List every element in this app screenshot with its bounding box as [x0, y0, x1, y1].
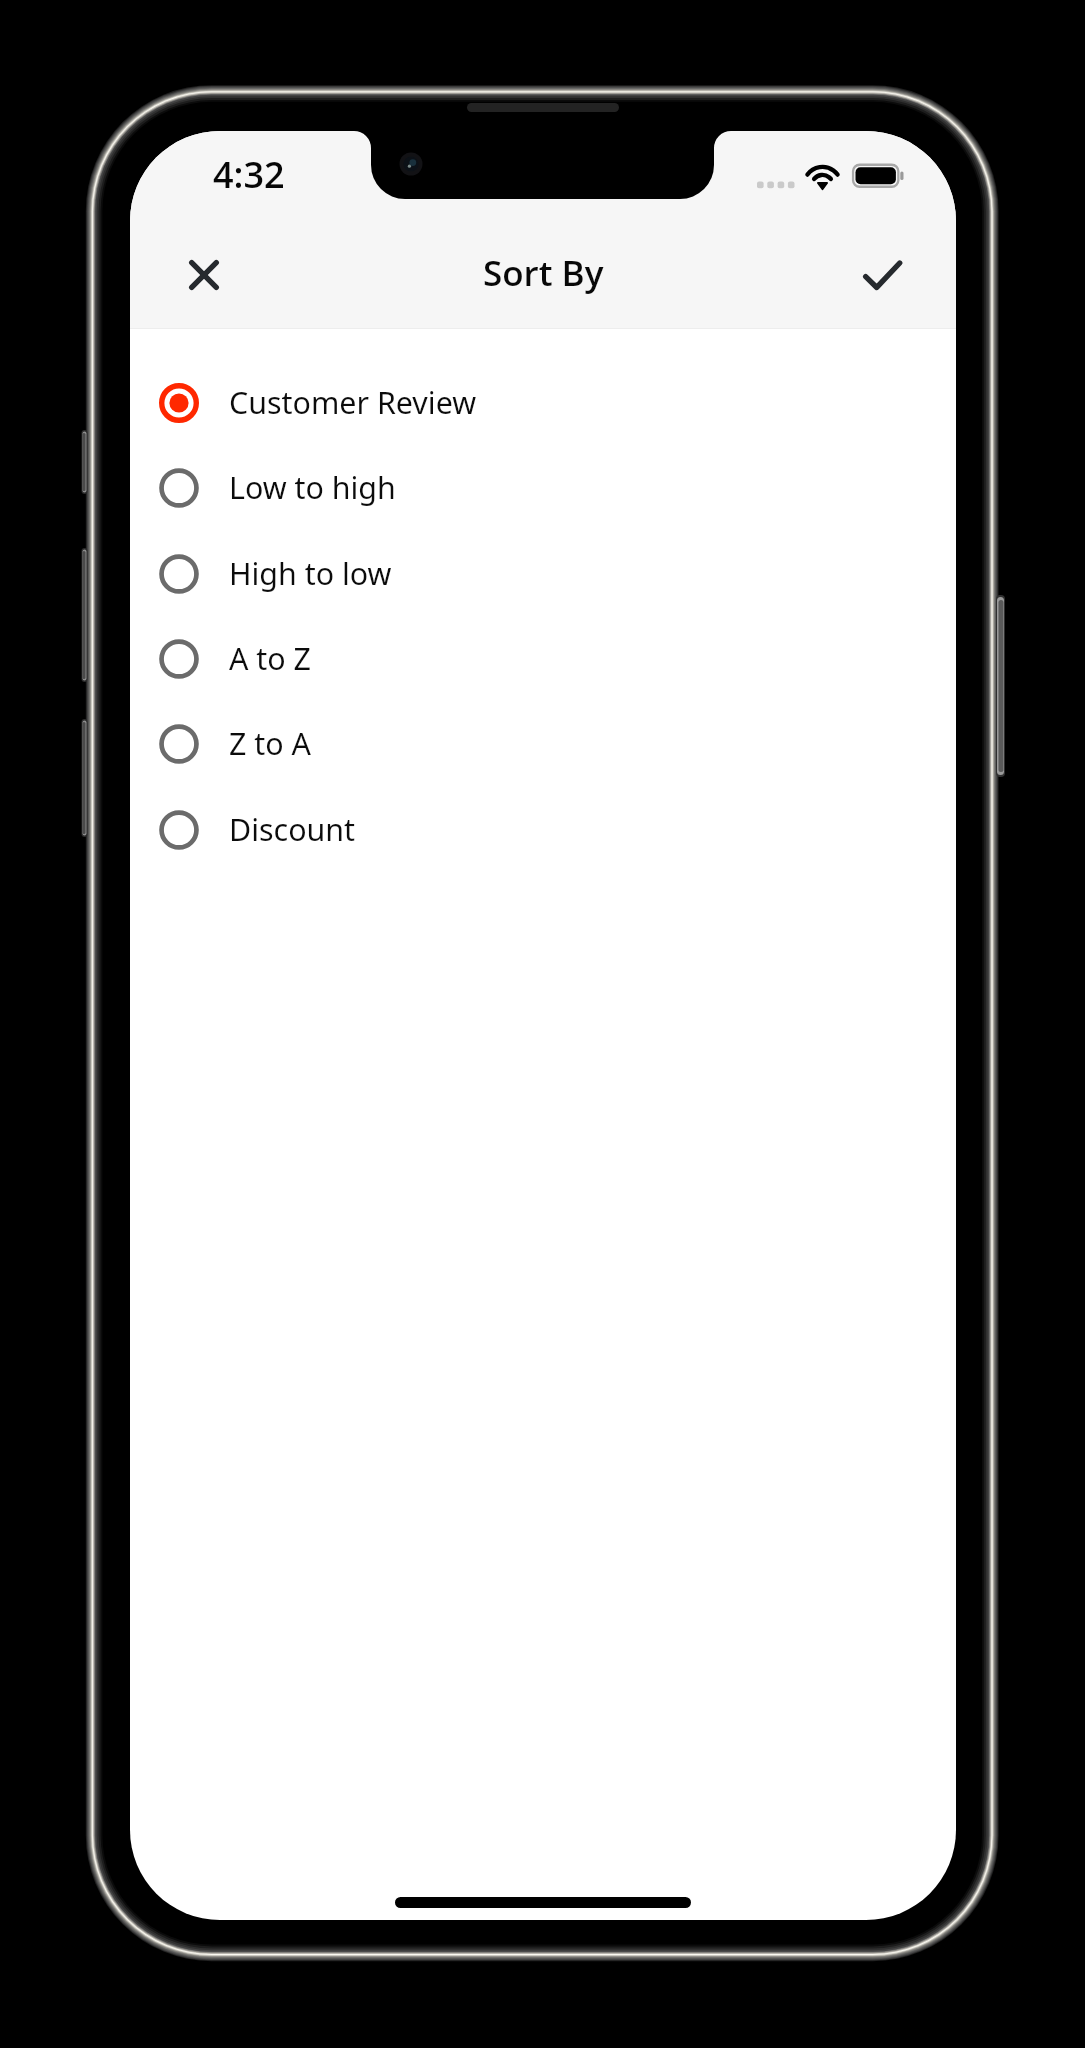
staticText: Discount — [229, 809, 356, 850]
button[interactable]: A to Z — [130, 616, 956, 701]
staticText: Z to A — [229, 723, 311, 764]
button[interactable]: Close — [160, 231, 248, 319]
button[interactable]: Discount — [130, 787, 956, 872]
staticText: High to low — [229, 553, 392, 594]
button[interactable]: Low to high — [130, 445, 956, 530]
staticText: Low to high — [229, 467, 396, 508]
staticText: Customer Review — [229, 382, 477, 423]
staticText: A to Z — [229, 638, 311, 679]
staticText: 4:32 — [213, 150, 285, 199]
button[interactable]: Customer Review — [130, 360, 956, 445]
button[interactable]: Z to A — [130, 701, 956, 786]
button[interactable]: High to low — [130, 531, 956, 616]
staticText: Sort By — [483, 249, 604, 297]
button[interactable]: Apply sort — [838, 231, 926, 319]
